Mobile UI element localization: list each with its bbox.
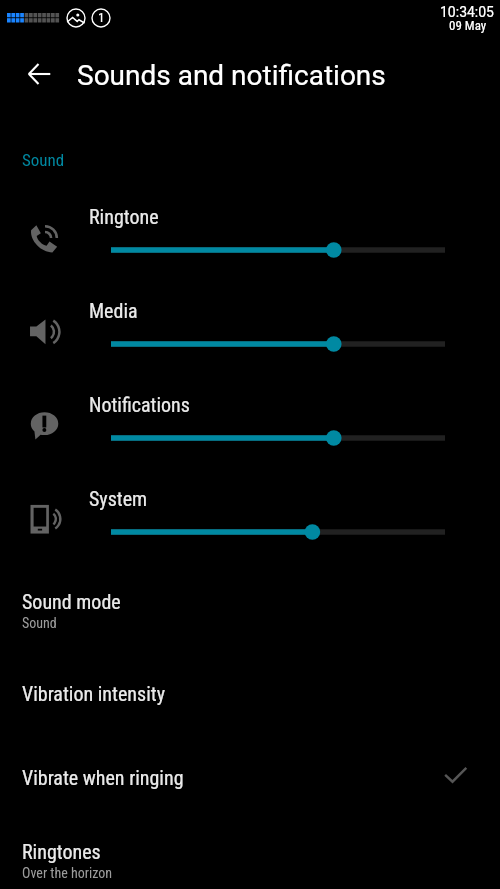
staticText: Media <box>89 299 138 322</box>
button[interactable]: Ringtones <box>0 826 500 888</box>
button[interactable]: Sound mode <box>0 576 500 638</box>
button[interactable]: Notifications count <box>91 8 111 28</box>
staticText: Ringtones <box>22 840 101 863</box>
staticText: 10:34:05 <box>440 4 494 20</box>
button[interactable]: Media <box>0 281 500 373</box>
button[interactable]: Screenshot <box>66 8 86 28</box>
button[interactable]: System <box>0 469 500 561</box>
button[interactable]: Vibration intensity <box>0 668 500 716</box>
staticText: Sound mode <box>22 590 121 613</box>
button[interactable]: Back <box>16 51 62 97</box>
staticText: System <box>89 487 148 510</box>
staticText: Sounds and notifications <box>77 59 386 92</box>
staticText: Ringtone <box>89 205 159 228</box>
staticText: Vibration intensity <box>22 682 165 705</box>
staticText: Vibrate when ringing <box>22 766 184 789</box>
button[interactable]: Notifications <box>0 375 500 467</box>
staticText: 09 May <box>449 18 487 33</box>
staticText: Sound <box>22 150 65 170</box>
staticText: Sound <box>22 615 57 631</box>
staticText: Notifications <box>89 393 190 416</box>
staticText: 1 <box>98 10 105 25</box>
button[interactable]: Vibrate when ringing <box>0 752 500 800</box>
staticText: Over the horizon <box>22 865 113 881</box>
button[interactable]: Ringtone <box>0 187 500 279</box>
